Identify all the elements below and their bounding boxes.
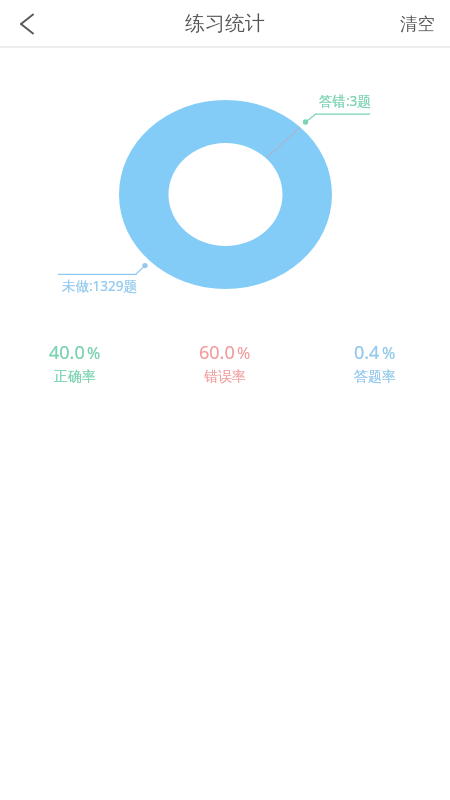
- staticText: 未做:1329题: [62, 277, 138, 295]
- staticText: %: [237, 342, 251, 364]
- staticText: 正确率: [54, 368, 96, 386]
- staticText: 错误率: [204, 368, 246, 386]
- staticText: 清空: [400, 13, 435, 35]
- staticText: 答题率: [354, 368, 396, 386]
- staticText: 60.0: [199, 340, 235, 365]
- staticText: 0.4: [354, 340, 380, 365]
- staticText: 练习统计: [185, 11, 265, 36]
- staticText: 答错:3题: [319, 92, 371, 110]
- staticText: %: [382, 342, 396, 364]
- staticText: %: [87, 342, 101, 364]
- button[interactable]: Back: [0, 0, 54, 47]
- staticText: 40.0: [49, 340, 85, 365]
- button[interactable]: 清空: [384, 0, 450, 47]
